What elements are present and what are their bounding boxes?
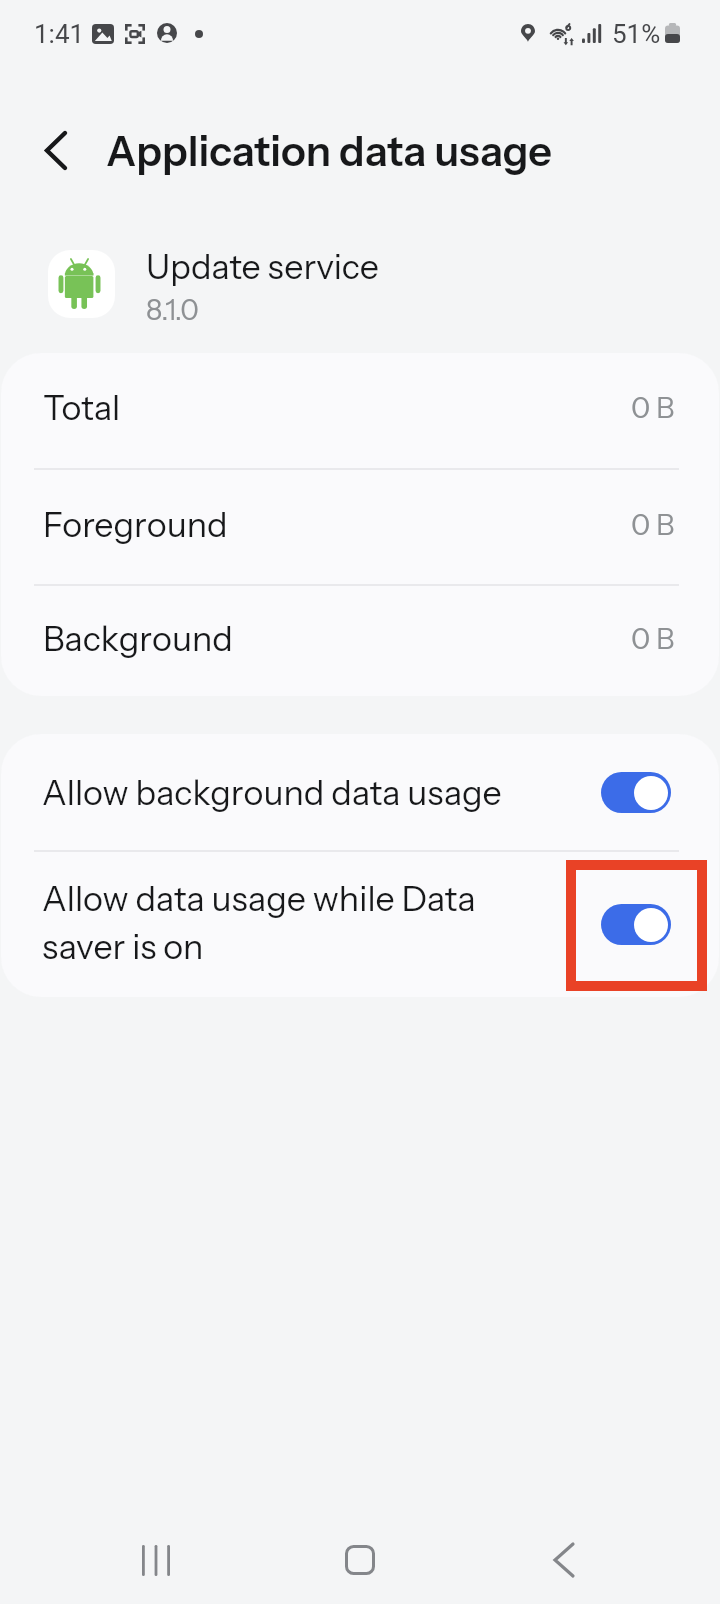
- button[interactable]: Home: [318, 1518, 402, 1602]
- button[interactable]: Allow data usage while Data saver is on: [1, 852, 719, 997]
- staticText: 0 B: [631, 507, 675, 542]
- staticText: Allow background data usage: [42, 772, 589, 813]
- staticText: Background: [43, 618, 233, 659]
- button[interactable]: Total: [1, 353, 719, 468]
- button[interactable]: Allow background data usage: [1, 734, 719, 850]
- staticText: 0 B: [631, 390, 675, 425]
- button[interactable]: Toggle on: [601, 904, 671, 945]
- staticText: Update service: [146, 246, 380, 287]
- button[interactable]: Navigate up: [22, 116, 90, 184]
- button[interactable]: Toggle on: [601, 772, 671, 813]
- staticText: 51%: [612, 19, 661, 49]
- staticText: Allow data usage while Data saver is on: [42, 878, 589, 968]
- button[interactable]: Recent apps: [114, 1518, 198, 1602]
- button[interactable]: Back: [522, 1518, 606, 1602]
- button[interactable]: Background: [1, 586, 719, 696]
- button[interactable]: Foreground: [1, 470, 719, 584]
- staticText: Foreground: [43, 504, 228, 545]
- staticText: Total: [43, 387, 121, 428]
- staticText: 0 B: [631, 621, 675, 656]
- staticText: Application data usage: [106, 126, 552, 177]
- staticText: 1:41: [34, 19, 85, 49]
- staticText: 8.1.0: [146, 293, 199, 327]
